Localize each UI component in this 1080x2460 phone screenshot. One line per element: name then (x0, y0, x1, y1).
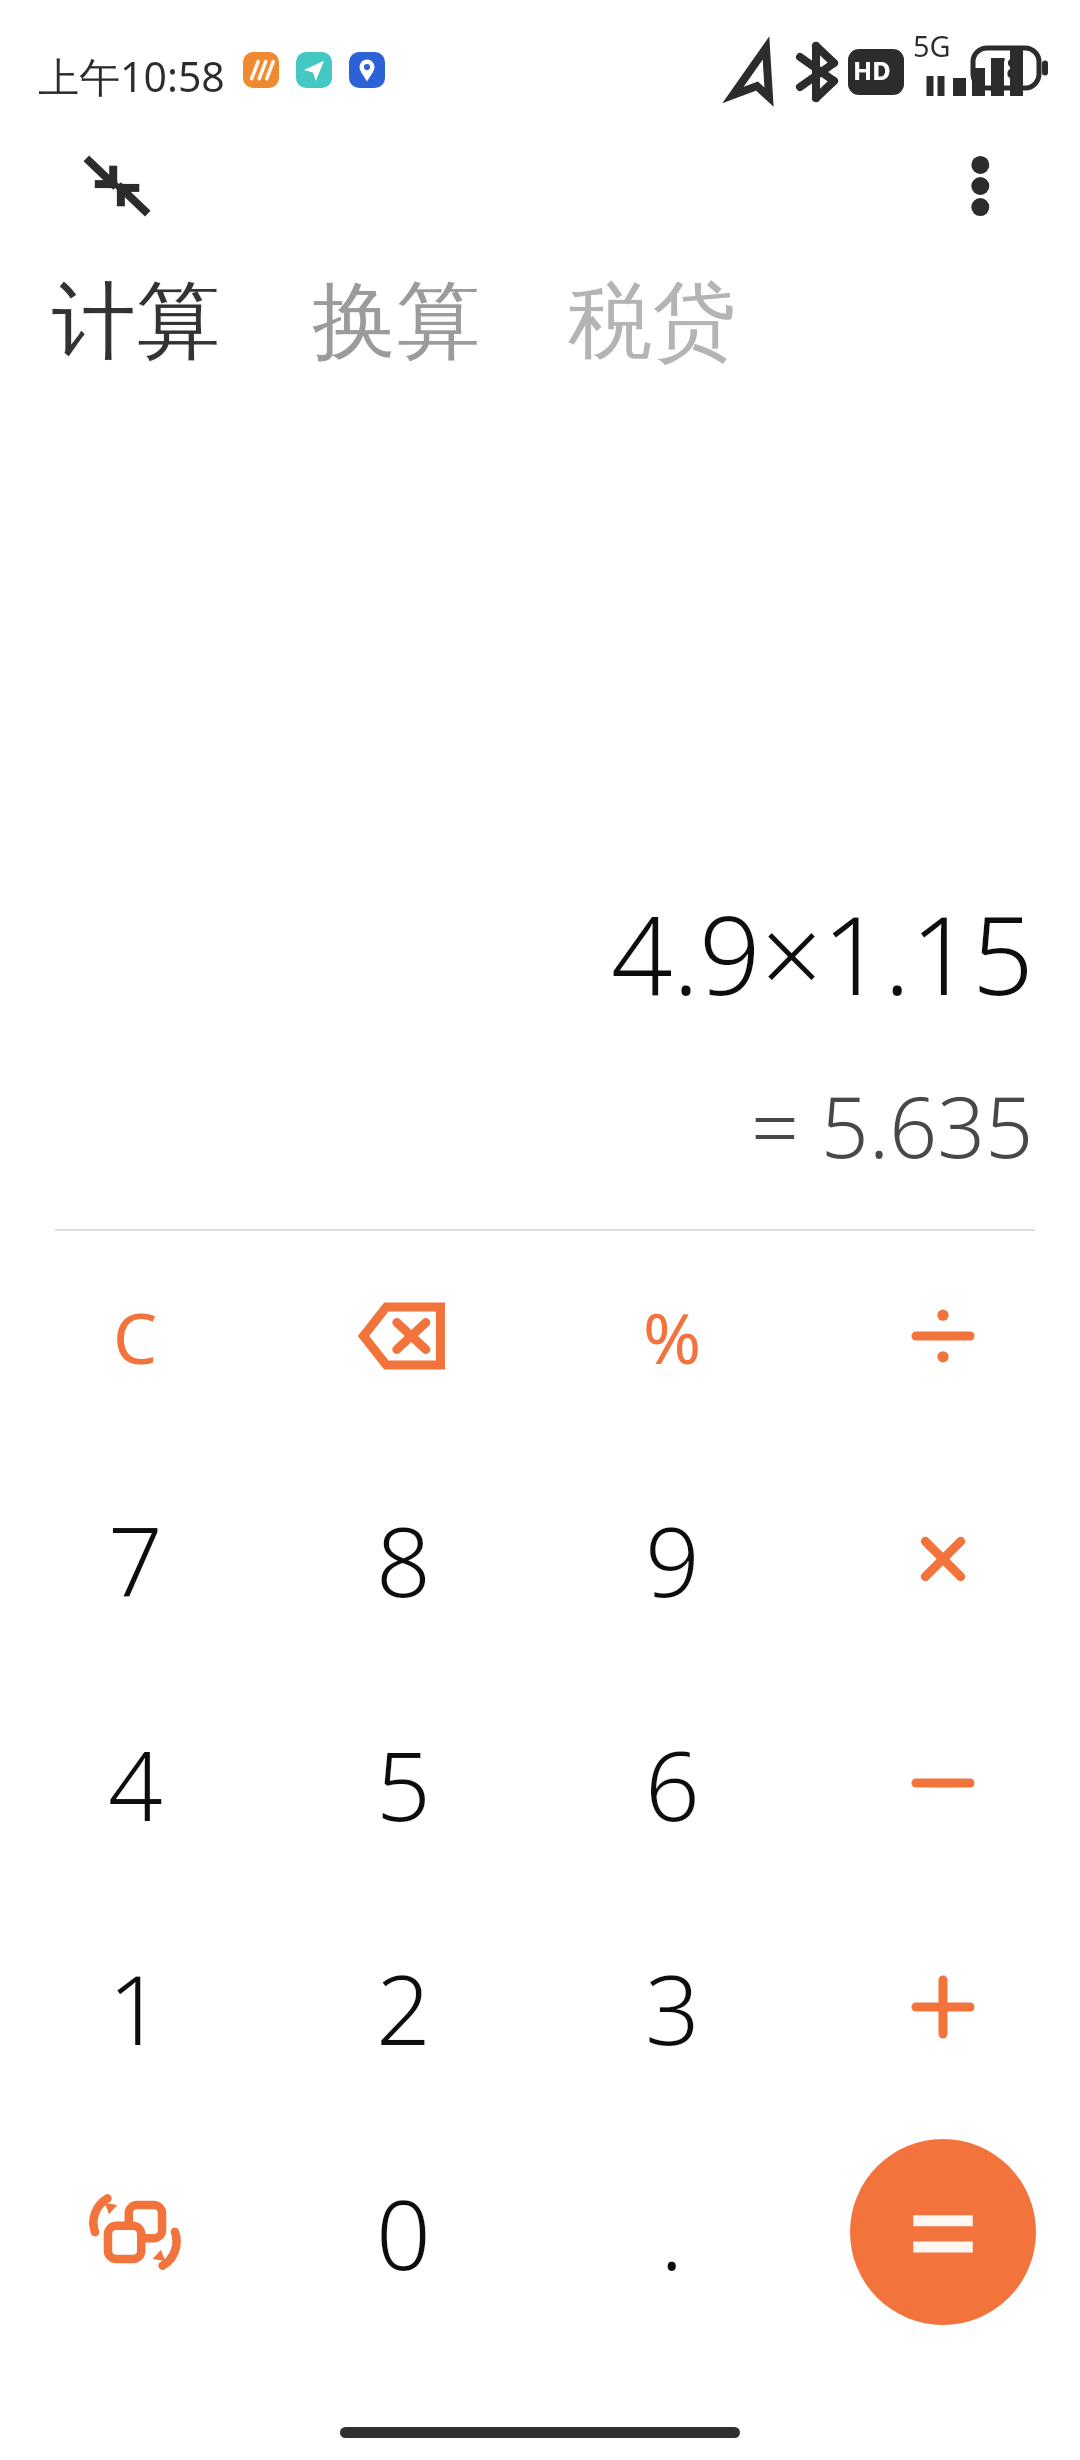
staticText: 7 (108, 1494, 163, 1625)
button[interactable]: More options (940, 138, 1036, 234)
button[interactable]: 6 (572, 1690, 772, 1876)
button[interactable]: % (572, 1243, 772, 1429)
staticText: 0 (376, 2167, 431, 2298)
button[interactable]: 8 (303, 1466, 503, 1652)
button[interactable]: 换算 (312, 262, 557, 382)
button[interactable]: . (572, 2139, 772, 2325)
button[interactable]: 计算 (52, 262, 302, 382)
button[interactable]: C (35, 1243, 235, 1429)
staticText: 5 (376, 1718, 431, 1849)
staticText: 换算 (312, 269, 480, 375)
staticText: 4 (108, 1718, 163, 1849)
button[interactable]: 2 (303, 1914, 503, 2100)
staticText: 计算 (52, 269, 220, 375)
button[interactable]: Equals (850, 2139, 1036, 2325)
button[interactable]: Multiply (850, 1466, 1036, 1652)
staticText: HD (853, 53, 891, 87)
staticText: 上午10:58 (38, 48, 225, 104)
staticText: . (660, 2167, 684, 2298)
staticText: 2 (376, 1942, 431, 2073)
staticText: 5G (913, 26, 951, 65)
button[interactable]: 0 (303, 2139, 503, 2325)
button[interactable]: 9 (572, 1466, 772, 1652)
button[interactable]: Subtract (850, 1690, 1036, 1876)
button[interactable]: 7 (35, 1466, 235, 1652)
button[interactable]: Backspace (310, 1243, 496, 1429)
button[interactable]: Divide (850, 1243, 1036, 1429)
staticText: = 5.635 (751, 1068, 1034, 1178)
staticText: 3 (645, 1942, 700, 2073)
staticText: C (113, 1289, 158, 1384)
button[interactable]: 4 (35, 1690, 235, 1876)
staticText: 4.9×1.15 (611, 880, 1034, 1010)
staticText: 9 (645, 1494, 700, 1625)
button[interactable]: 1 (35, 1914, 235, 2100)
button[interactable]: 5 (303, 1690, 503, 1876)
staticText: 1 (108, 1942, 163, 2073)
staticText: 税贷 (568, 269, 736, 375)
button[interactable]: Add (850, 1914, 1036, 2100)
button[interactable]: 3 (572, 1914, 772, 2100)
staticText: 78 (990, 49, 1023, 87)
staticText: 8 (376, 1494, 431, 1625)
staticText: 6 (645, 1718, 700, 1849)
button[interactable]: Collapse (70, 138, 166, 234)
button[interactable]: 税贷 (568, 262, 813, 382)
button[interactable]: Unit converter (42, 2139, 228, 2325)
staticText: % (643, 1289, 702, 1384)
